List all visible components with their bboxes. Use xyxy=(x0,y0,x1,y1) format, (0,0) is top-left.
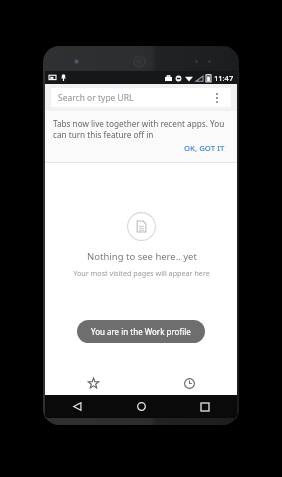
staticText: Search or type URL xyxy=(58,92,210,104)
button[interactable]: Home xyxy=(109,395,173,418)
staticText: 11:47 xyxy=(214,73,234,83)
button[interactable]: Back xyxy=(45,395,109,418)
button[interactable]: OK, GOT IT xyxy=(180,140,229,157)
button[interactable]: History xyxy=(141,371,237,395)
button[interactable]: More options xyxy=(210,91,224,105)
button[interactable]: Bookmarks xyxy=(45,371,141,395)
staticText: Tabs now live together with recent apps.… xyxy=(53,118,229,140)
button[interactable]: Search or type URL xyxy=(51,88,231,107)
staticText: Nothing to see here.. yet xyxy=(87,250,197,263)
staticText: Your most visited pages will appear here xyxy=(73,268,210,278)
staticText: You are in the Work profile xyxy=(91,326,191,337)
button[interactable]: Recent apps xyxy=(173,395,237,418)
button[interactable]: You are in the Work profile xyxy=(77,320,205,343)
